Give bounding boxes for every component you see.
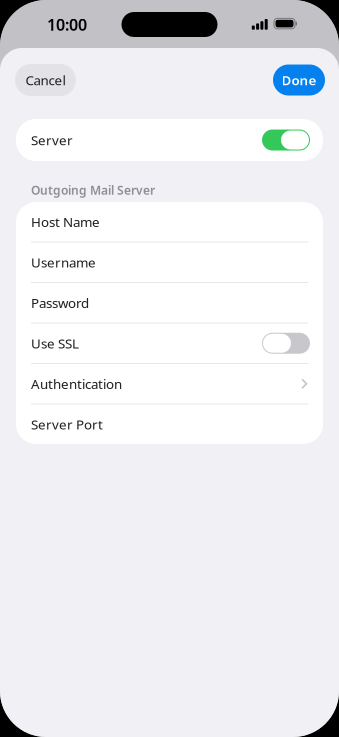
staticText: Cancel [25,71,65,89]
staticText: Done [281,71,316,89]
button[interactable]: Server Port [16,404,323,444]
button[interactable]: Password [16,283,323,322]
button[interactable]: Done [273,64,325,95]
button[interactable]: Cancel [15,64,76,96]
staticText: Password [31,294,89,312]
staticText: Use SSL [31,334,79,352]
staticText: 10:00 [47,14,87,35]
button[interactable]: Server [16,119,323,161]
staticText: Server [31,131,73,149]
staticText: Outgoing Mail Server [31,182,155,198]
button[interactable]: Use SSL [16,323,323,363]
button[interactable]: Username [16,242,323,282]
button[interactable]: Host Name [16,202,323,241]
button[interactable]: Authentication [16,364,323,403]
staticText: Authentication [31,375,122,393]
staticText: Server Port [31,415,103,433]
staticText: Username [31,253,96,271]
staticText: Host Name [31,213,100,231]
